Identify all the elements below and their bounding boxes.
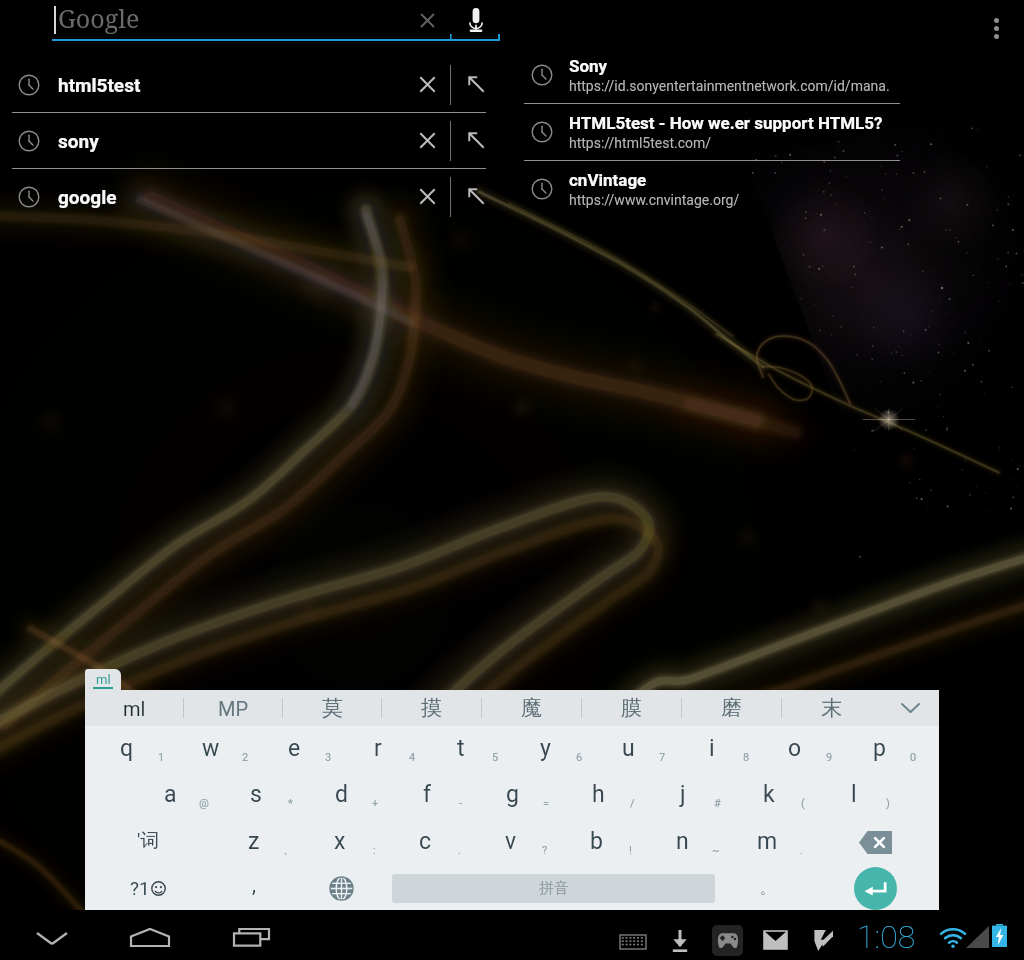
button[interactable]: 摸 — [382, 690, 481, 726]
button[interactable]: Backspace — [835, 819, 915, 865]
staticText: g — [506, 781, 519, 808]
button[interactable]: b — [570, 819, 654, 865]
button[interactable]: MP — [184, 690, 282, 726]
staticText: 。 — [760, 880, 774, 898]
staticText: HTML5test - How we.er support HTML5? — [569, 113, 883, 133]
staticText: / — [630, 797, 635, 810]
staticText: , — [252, 873, 256, 896]
button[interactable]: More options — [976, 8, 1016, 48]
button[interactable]: g — [486, 772, 570, 819]
button[interactable]: k — [743, 772, 827, 819]
button[interactable]: Use this query — [449, 169, 503, 224]
staticText: + — [372, 797, 379, 810]
button[interactable]: p — [853, 726, 937, 772]
button[interactable]: Tasks — [804, 925, 842, 955]
button[interactable]: v — [485, 819, 569, 865]
staticText: v — [505, 828, 517, 855]
staticText: = — [543, 797, 550, 810]
button[interactable]: j — [657, 772, 741, 819]
staticText: cnVintage — [569, 170, 647, 190]
button[interactable]: Use this query — [449, 113, 503, 168]
button[interactable]: '词 — [110, 819, 186, 865]
button[interactable]: cnVintage — [524, 161, 900, 217]
button[interactable]: h — [572, 772, 656, 819]
button[interactable]: m — [741, 819, 825, 865]
button[interactable]: 拼音 — [392, 874, 715, 903]
button[interactable]: google — [0, 169, 492, 224]
button[interactable]: Remove suggestion — [400, 57, 454, 112]
staticText: 、 — [283, 843, 294, 857]
button[interactable]: y — [519, 726, 603, 772]
button[interactable]: 磨 — [682, 690, 781, 726]
button[interactable]: Email — [754, 925, 796, 955]
button[interactable]: sony — [0, 113, 492, 168]
button[interactable]: w — [185, 726, 269, 772]
staticText: sony — [58, 130, 99, 152]
button[interactable]: x — [314, 819, 398, 865]
staticText: ) — [886, 797, 890, 810]
staticText: h — [592, 781, 605, 808]
button[interactable]: Clear query — [405, 1, 449, 39]
button[interactable]: c — [399, 819, 483, 865]
staticText: e — [288, 735, 301, 762]
button[interactable]: Downloads — [660, 924, 700, 958]
staticText: r — [374, 735, 382, 762]
staticText: @ — [199, 797, 209, 810]
button[interactable]: 。 — [732, 865, 802, 912]
button[interactable]: Voice search — [452, 1, 500, 39]
staticText: o — [788, 735, 802, 762]
button[interactable]: z — [228, 819, 312, 865]
button[interactable]: Remove suggestion — [400, 113, 454, 168]
staticText: n — [676, 828, 689, 855]
button[interactable]: Home — [118, 916, 182, 958]
staticText: f — [423, 781, 431, 808]
staticText: a — [164, 781, 177, 808]
staticText: ! — [629, 844, 632, 857]
button[interactable]: 膜 — [582, 690, 681, 726]
button[interactable]: Keyboard — [612, 928, 654, 956]
button[interactable]: q — [101, 726, 185, 772]
button[interactable]: 莫 — [283, 690, 381, 726]
button[interactable]: Recent apps — [219, 916, 283, 958]
button[interactable]: ml — [85, 690, 183, 726]
staticText: * — [288, 797, 293, 810]
button[interactable]: n — [656, 819, 740, 865]
button[interactable]: Sony — [524, 47, 900, 103]
button[interactable]: ?1 — [104, 865, 192, 912]
button[interactable]: Enter — [835, 866, 915, 911]
button[interactable]: html5test — [0, 57, 492, 112]
button[interactable]: f — [401, 772, 485, 819]
button[interactable]: s — [230, 772, 314, 819]
button[interactable]: t — [435, 726, 519, 772]
staticText: Google — [58, 1, 140, 35]
button[interactable]: Game controller — [712, 925, 743, 956]
staticText: # — [714, 797, 721, 810]
staticText: 莫 — [322, 695, 343, 721]
button[interactable]: r — [352, 726, 436, 772]
button[interactable]: Remove suggestion — [400, 169, 454, 224]
staticText: https://id.sonyentertainmentnetwork.com/… — [569, 78, 890, 94]
button[interactable]: i — [686, 726, 770, 772]
staticText: 0 — [910, 751, 917, 764]
staticText: d — [335, 781, 348, 808]
staticText: 9 — [826, 751, 833, 764]
button[interactable]: Switch language — [306, 865, 376, 912]
button[interactable]: 末 — [782, 690, 881, 726]
button[interactable]: d — [315, 772, 399, 819]
staticText: z — [248, 828, 260, 855]
button[interactable]: 魔 — [482, 690, 581, 726]
button[interactable]: , — [214, 865, 294, 912]
button[interactable]: o — [769, 726, 853, 772]
button[interactable]: HTML5test - How we.er support HTML5? — [524, 104, 900, 160]
button[interactable]: a — [144, 772, 228, 819]
button[interactable]: u — [602, 726, 686, 772]
button[interactable]: e — [268, 726, 352, 772]
button[interactable]: Back — [20, 918, 84, 958]
button[interactable] — [52, 0, 500, 41]
button[interactable]: Use this query — [449, 57, 503, 112]
staticText: 摸 — [421, 695, 442, 721]
staticText: p — [873, 735, 886, 762]
button[interactable]: l — [828, 772, 912, 819]
button[interactable]: More candidates — [881, 690, 939, 726]
staticText: u — [622, 735, 635, 762]
